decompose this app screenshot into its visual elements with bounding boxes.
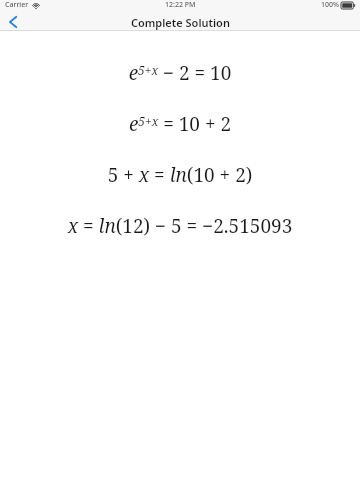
staticText: e5+x = 10 + 2 [0, 111, 360, 137]
staticText: 5 + x = ln(10 + 2) [0, 162, 360, 188]
staticText: 100% [321, 0, 339, 10]
button[interactable]: Back [0, 14, 26, 30]
staticText: x = ln(12) − 5 = −2.515093 [0, 213, 360, 239]
staticText: Carrier [5, 0, 29, 10]
staticText: Complete Solution [131, 15, 230, 30]
staticText: 12:22 PM [165, 0, 196, 10]
staticText: e5+x − 2 = 10 [0, 60, 360, 86]
